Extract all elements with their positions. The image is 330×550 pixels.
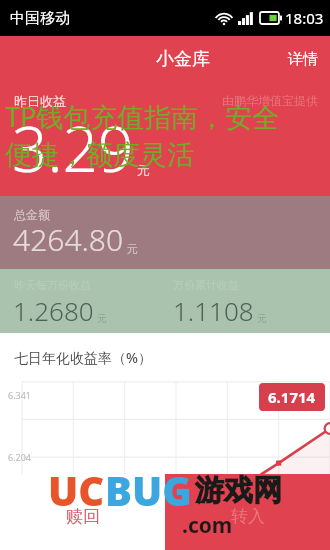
button[interactable]: 详情 — [276, 38, 330, 81]
staticText: 昨日收益 — [14, 93, 66, 109]
staticText: 七日年化收益率（%） — [14, 348, 152, 367]
staticText: BUG — [105, 463, 192, 517]
staticText: 6.341 — [8, 389, 32, 401]
staticText: 万份累计收益 — [173, 278, 239, 292]
staticText: 转入 — [231, 506, 265, 527]
staticText: 6.204 — [8, 451, 32, 463]
staticText: 1.1108 — [173, 293, 254, 328]
staticText: 1.2680 — [13, 293, 94, 328]
staticText: UC — [48, 463, 105, 517]
staticText: 6.1714 — [268, 387, 316, 407]
staticText: 小金库 — [156, 48, 210, 71]
staticText: TP钱包充值指南，安全 便捷，额度灵活 — [5, 98, 280, 172]
staticText: 4264.80 — [13, 219, 124, 260]
button[interactable]: 赎回 — [0, 474, 165, 550]
staticText: 18:03 — [285, 8, 324, 28]
other: Wi-Fi — [216, 12, 232, 25]
other: Signal — [238, 12, 254, 25]
staticText: 总金额 — [14, 207, 50, 222]
staticText: .com — [182, 511, 233, 540]
staticText: 3.29 — [12, 106, 134, 190]
button[interactable]: 转入 — [165, 474, 330, 550]
staticText: 由鹏华增值宝提供 — [222, 93, 318, 108]
other: Battery — [260, 12, 282, 24]
staticText: 元 — [127, 242, 138, 256]
staticText: 元 — [257, 312, 267, 325]
staticText: 游戏网 — [195, 472, 282, 509]
staticText: 详情 — [288, 50, 318, 69]
staticText: 赎回 — [66, 506, 100, 527]
staticText: 元 — [97, 312, 107, 325]
staticText: 中国移动 — [10, 9, 70, 28]
staticText: 昨天每万份收益 — [14, 278, 91, 292]
staticText: 元 — [137, 162, 150, 178]
